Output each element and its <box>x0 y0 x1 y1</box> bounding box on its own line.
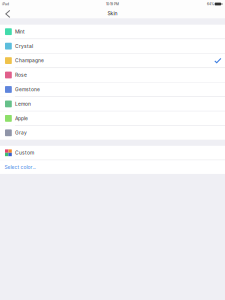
button[interactable]: Lemon <box>0 97 225 111</box>
staticText: Select color... <box>4 164 35 170</box>
staticText: Custom <box>15 150 34 156</box>
staticText: iPad <box>2 2 9 6</box>
button[interactable]: Rose <box>0 68 225 82</box>
button[interactable]: Apple <box>0 111 225 125</box>
button[interactable]: Mint <box>0 25 225 39</box>
button[interactable]: Custom <box>0 146 225 160</box>
button[interactable]: Crystal <box>0 39 225 53</box>
staticText: Apple <box>15 115 28 121</box>
staticText: Gemstone <box>15 86 40 92</box>
staticText: Lemon <box>15 101 31 107</box>
staticText: Gray <box>15 130 27 136</box>
staticText: 64% <box>207 2 214 6</box>
button[interactable]: Back <box>0 9 14 18</box>
button[interactable]: Select color... <box>0 160 225 174</box>
staticText: Champagne <box>15 58 44 64</box>
button[interactable]: Gray <box>0 126 225 140</box>
button[interactable]: Champagne <box>0 54 225 67</box>
staticText: Mint <box>15 29 25 35</box>
staticText: Skin <box>107 10 117 16</box>
staticText: Rose <box>15 72 27 78</box>
staticText: Crystal <box>15 43 33 49</box>
staticText: 10:19 PM <box>106 2 119 6</box>
button[interactable]: Gemstone <box>0 82 225 96</box>
